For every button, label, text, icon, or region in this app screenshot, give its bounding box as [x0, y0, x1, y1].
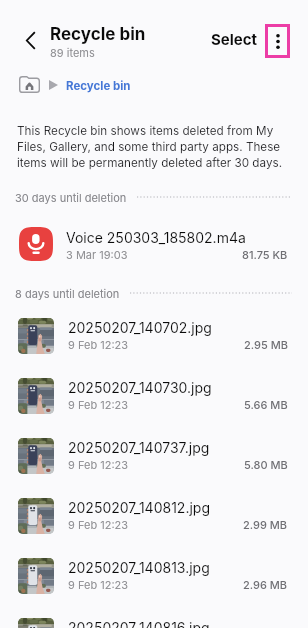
staticText: 9 Feb 12:23: [68, 578, 129, 591]
staticText: 3 Mar 19:03: [66, 248, 128, 261]
button[interactable]: 20250207_140702.jpg: [0, 302, 308, 362]
button[interactable]: 20250207_140812.jpg: [0, 482, 308, 542]
staticText: 20250207_140737.jpg: [68, 439, 210, 456]
staticText: 5.66 MB: [244, 398, 288, 411]
staticText: Recycle bin: [50, 24, 146, 45]
staticText: Select: [211, 30, 258, 48]
staticText: 20250207_140730.jpg: [68, 379, 212, 396]
button[interactable]: 20250207_140737.jpg: [0, 422, 308, 482]
button[interactable]: Voice 250303_185802.m4a: [0, 212, 308, 272]
button[interactable]: 20250207_140816.jpg: [0, 602, 308, 628]
button[interactable]: 20250207_140813.jpg: [0, 542, 308, 602]
button[interactable]: 20250207_140730.jpg: [0, 362, 308, 422]
staticText: 9 Feb 12:23: [68, 518, 129, 531]
staticText: 20250207_140812.jpg: [68, 499, 210, 516]
staticText: 8 days until deletion: [15, 287, 120, 300]
staticText: 20250207_140813.jpg: [68, 559, 210, 576]
button[interactable]: Back: [8, 18, 52, 62]
staticText: Voice 250303_185802.m4a: [66, 229, 246, 246]
staticText: 2.96 MB: [243, 578, 288, 591]
staticText: 2.99 MB: [243, 518, 288, 531]
button[interactable]: More options: [265, 24, 290, 58]
staticText: 9 Feb 12:23: [68, 338, 129, 351]
button[interactable]: Home folder: [13, 70, 46, 98]
staticText: 30 days until deletion: [15, 191, 127, 204]
staticText: 2.95 MB: [244, 338, 288, 351]
staticText: 20250207_140816.jpg: [68, 619, 210, 628]
staticText: Recycle bin: [66, 79, 131, 93]
button[interactable]: Select: [211, 22, 258, 56]
staticText: 9 Feb 12:23: [68, 398, 129, 411]
staticText: 81.75 KB: [242, 248, 288, 261]
staticText: 89 items: [50, 46, 95, 59]
staticText: 9 Feb 12:23: [68, 458, 129, 471]
staticText: 20250207_140702.jpg: [68, 319, 212, 336]
staticText: 5.80 MB: [244, 458, 288, 471]
staticText: This Recycle bin shows items deleted fro…: [17, 124, 293, 169]
button[interactable]: Recycle bin: [66, 75, 131, 97]
